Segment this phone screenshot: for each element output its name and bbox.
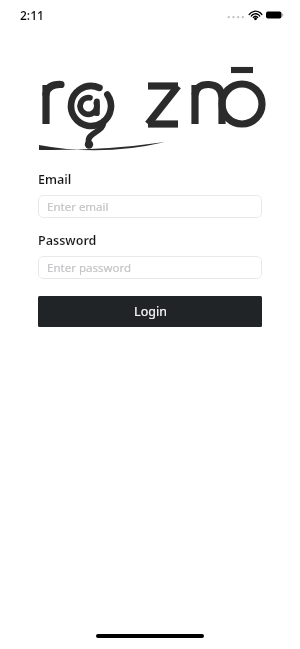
button[interactable]: Enter email — [38, 195, 262, 218]
staticText: Enter email — [47, 199, 109, 215]
staticText: Password — [38, 232, 97, 249]
staticText: Login — [134, 303, 167, 320]
staticText: Enter password — [47, 260, 132, 276]
button[interactable]: Enter password — [38, 256, 262, 279]
button[interactable]: Login — [38, 296, 262, 327]
staticText: 2:11 — [20, 7, 44, 23]
staticText: Email — [38, 171, 72, 188]
